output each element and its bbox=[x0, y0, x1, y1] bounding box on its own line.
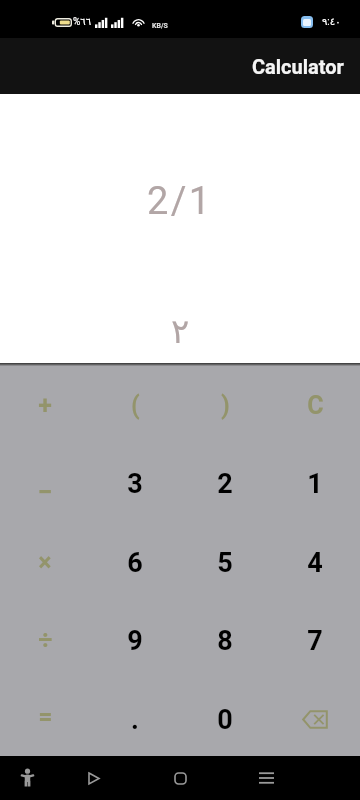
staticText: 1 bbox=[307, 468, 323, 500]
button[interactable]: Back bbox=[72, 756, 116, 800]
button[interactable]: = bbox=[0, 678, 90, 756]
other: Backspace bbox=[300, 708, 330, 730]
staticText: ٢ bbox=[171, 311, 190, 351]
staticText: 4 bbox=[307, 547, 323, 579]
staticText: 3 bbox=[127, 468, 143, 500]
button[interactable]: 2 bbox=[180, 444, 270, 522]
button[interactable]: 8 bbox=[180, 600, 270, 678]
button[interactable]: 6 bbox=[90, 522, 180, 600]
staticText: − bbox=[37, 476, 53, 508]
staticText: 8 bbox=[217, 625, 233, 657]
button[interactable]: Accessibility bbox=[5, 756, 49, 800]
staticText: 2 bbox=[217, 468, 233, 500]
staticText: C bbox=[307, 391, 324, 420]
button[interactable]: . bbox=[90, 678, 180, 756]
staticText: . bbox=[131, 704, 139, 736]
staticText: Calculator bbox=[252, 55, 344, 78]
button[interactable]: 1 bbox=[270, 444, 360, 522]
button[interactable]: × bbox=[0, 522, 90, 600]
staticText: × bbox=[38, 548, 52, 577]
staticText: ٩:٤٠ bbox=[322, 16, 341, 28]
button[interactable]: ( bbox=[90, 366, 180, 444]
staticText: 6 bbox=[127, 547, 143, 579]
button[interactable]: C bbox=[270, 366, 360, 444]
button[interactable]: 4 bbox=[270, 522, 360, 600]
button[interactable]: ÷ bbox=[0, 600, 90, 678]
staticText: 9 bbox=[127, 625, 143, 657]
button[interactable]: Recent apps bbox=[244, 756, 288, 800]
button[interactable]: ) bbox=[180, 366, 270, 444]
button[interactable]: 9 bbox=[90, 600, 180, 678]
staticText: = bbox=[38, 702, 53, 731]
staticText: ) bbox=[221, 391, 230, 420]
staticText: KB/S bbox=[152, 22, 168, 30]
staticText: 7 bbox=[307, 625, 323, 657]
staticText: 0 bbox=[217, 704, 233, 736]
staticText: %٦٦ bbox=[73, 16, 92, 28]
button[interactable]: Backspace bbox=[270, 678, 360, 756]
button[interactable]: 3 bbox=[90, 444, 180, 522]
staticText: ÷ bbox=[38, 626, 53, 655]
button[interactable]: − bbox=[0, 444, 90, 522]
button[interactable]: 5 bbox=[180, 522, 270, 600]
button[interactable]: Home bbox=[158, 756, 202, 800]
staticText: ( bbox=[131, 391, 140, 420]
button[interactable]: + bbox=[0, 366, 90, 444]
staticText: 2/1 bbox=[147, 179, 213, 224]
staticText: 5 bbox=[217, 547, 233, 579]
staticText: + bbox=[38, 391, 52, 420]
button[interactable]: 0 bbox=[180, 678, 270, 756]
button[interactable]: 7 bbox=[270, 600, 360, 678]
